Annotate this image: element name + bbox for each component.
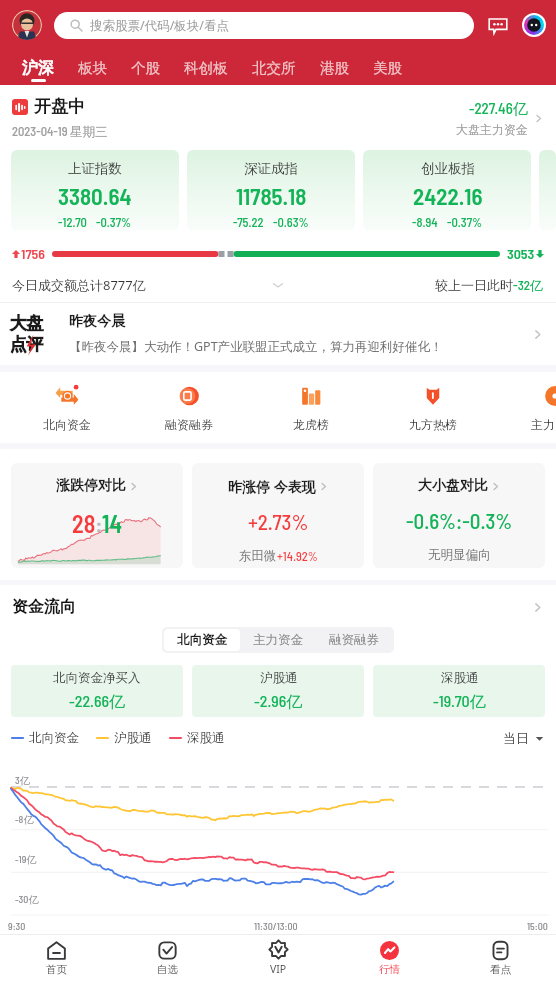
staticText: -32亿 <box>513 277 544 294</box>
button[interactable]: AI assistant <box>522 13 546 37</box>
staticText: 1756 <box>21 245 45 262</box>
button[interactable]: 深股通 <box>373 665 545 717</box>
staticText: 北向资金 <box>43 417 91 432</box>
button[interactable]: VIP <box>223 935 334 981</box>
staticText: 九方热榜 <box>409 417 457 432</box>
button[interactable]: 自选 <box>112 935 223 981</box>
button[interactable]: 港股 <box>308 50 361 85</box>
staticText: 深股通 <box>187 730 225 746</box>
button[interactable]: 深证成指 <box>187 150 355 231</box>
button[interactable]: Profile <box>12 10 42 40</box>
staticText: 开盘中 <box>34 96 85 117</box>
button[interactable]: 大盘 <box>0 303 556 365</box>
staticText: 15:00 <box>527 920 548 932</box>
staticText: -2.96亿 <box>254 691 303 712</box>
staticText: -30亿 <box>15 893 39 906</box>
button[interactable]: 搜索股票/代码/板块/看点 <box>54 12 474 39</box>
staticText: 主力资金 <box>253 632 303 648</box>
staticText: 沪股通 <box>114 730 152 746</box>
staticText: -227.46亿 <box>469 99 528 118</box>
button[interactable]: 美股 <box>361 50 414 85</box>
staticText: +2.73% <box>248 509 309 534</box>
button[interactable]: 个股 <box>119 50 172 85</box>
staticText: 2023-04-19 星期三 <box>12 123 108 139</box>
staticText: 融资融券 <box>329 632 379 648</box>
staticText: +14.92% <box>277 548 318 563</box>
staticText: 涨跌停对比 <box>56 477 126 495</box>
staticText: 北向资金 <box>29 730 79 746</box>
staticText: 沪深 <box>22 58 54 78</box>
staticText: 北向资金净买入 <box>53 670 141 686</box>
staticText: 昨涨停 今表现 <box>228 477 316 496</box>
button[interactable]: 大小盘对比 <box>373 463 545 568</box>
button[interactable]: 涨跌停对比 <box>11 463 183 568</box>
staticText: 北交所 <box>252 59 296 77</box>
button[interactable]: 首页 <box>0 935 112 981</box>
button[interactable]: 当日 <box>503 730 544 746</box>
button[interactable] <box>539 150 556 231</box>
staticText: 沪股通 <box>260 670 298 686</box>
button[interactable]: 北向资金 <box>164 629 240 651</box>
staticText: 行情 <box>379 963 400 976</box>
button[interactable]: -227.46亿 <box>456 99 544 137</box>
staticText: -0.37% <box>96 214 132 229</box>
button[interactable]: 北交所 <box>240 50 308 85</box>
button[interactable]: 看点 <box>445 935 556 981</box>
staticText: 今日成交额总计8777亿 <box>12 276 146 294</box>
button[interactable]: 融资融券 <box>128 372 250 443</box>
staticText: -8亿 <box>15 813 34 826</box>
staticText: 昨夜今晨 <box>69 313 125 331</box>
staticText: 港股 <box>320 59 349 77</box>
button[interactable]: 行情 <box>334 935 445 981</box>
staticText: 大小盘对比 <box>418 477 488 495</box>
button[interactable]: 上证指数 <box>11 150 179 231</box>
staticText: 个股 <box>131 59 160 77</box>
staticText: -22.66亿 <box>69 691 126 712</box>
staticText: 此时 <box>487 277 513 293</box>
staticText: 主力资金 <box>531 417 556 432</box>
button[interactable]: 沪股通 <box>192 665 364 717</box>
staticText: 无明显偏向 <box>428 547 491 563</box>
staticText: 自选 <box>157 963 178 976</box>
staticText: : <box>96 512 102 536</box>
staticText: -0.63% <box>273 214 309 229</box>
button[interactable]: 龙虎榜 <box>250 372 372 443</box>
staticText: 上证指数 <box>68 160 122 177</box>
staticText: 大盘 <box>10 313 43 334</box>
button[interactable]: 北向资金净买入 <box>11 665 183 717</box>
staticText: -12.70 <box>58 214 87 229</box>
staticText: -0.37% <box>447 214 483 229</box>
button[interactable]: 融资融券 <box>316 629 392 651</box>
staticText: 搜索股票/代码/板块/看点 <box>90 17 229 34</box>
button[interactable]: 沪深 <box>10 50 66 85</box>
staticText: 东田微 <box>239 548 277 564</box>
staticText: 3亿 <box>15 774 30 787</box>
staticText: -8.94 <box>412 214 438 229</box>
staticText: -0.6%:-0.3% <box>406 508 513 533</box>
staticText: 【昨夜今晨】大动作！GPT产业联盟正式成立，算力再迎利好催化！ <box>69 338 443 355</box>
button[interactable]: 九方热榜 <box>372 372 494 443</box>
staticText: -19亿 <box>15 853 37 866</box>
staticText: 点评 <box>10 334 43 355</box>
staticText: 14 <box>102 509 123 538</box>
button[interactable]: 主力资金 <box>240 629 316 651</box>
staticText: -19.70亿 <box>433 691 486 712</box>
staticText: 深证成指 <box>244 160 298 177</box>
staticText: 11:30/13:00 <box>254 920 298 932</box>
staticText: 板块 <box>78 59 107 77</box>
button[interactable]: 板块 <box>66 50 119 85</box>
button[interactable]: 主力资金 <box>494 372 556 443</box>
staticText: 美股 <box>373 59 402 77</box>
button[interactable]: 昨涨停 今表现 <box>192 463 364 568</box>
staticText: 3380.64 <box>58 182 132 210</box>
staticText: 11785.18 <box>236 182 307 210</box>
staticText: 科创板 <box>184 59 228 77</box>
button[interactable]: 科创板 <box>172 50 240 85</box>
staticText: -75.22 <box>233 214 264 229</box>
staticText: 融资融券 <box>165 417 213 432</box>
button[interactable]: Messages <box>487 14 509 36</box>
button[interactable]: More fund flow <box>531 601 544 614</box>
button[interactable]: 创业板指 <box>363 150 531 231</box>
staticText: 大盘主力资金 <box>456 122 528 137</box>
button[interactable]: 北向资金 <box>6 372 128 443</box>
